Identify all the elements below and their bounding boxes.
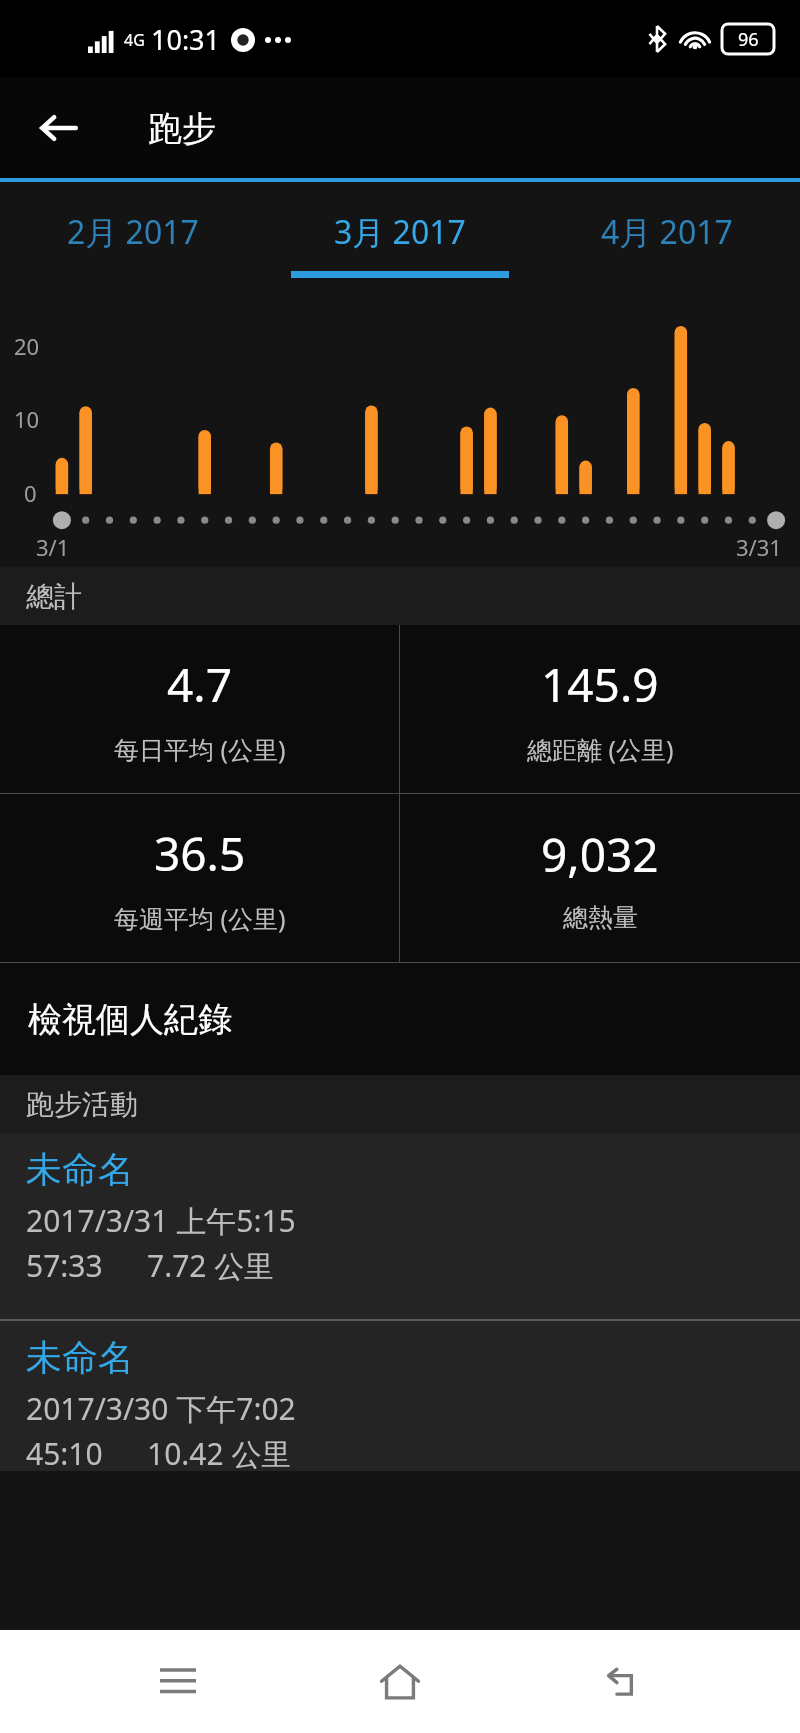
staticText: 3月 2017 <box>334 210 466 254</box>
staticText: 2017/3/30 下午7:02 <box>26 1388 296 1429</box>
button[interactable]: Home <box>355 1637 445 1727</box>
staticText: 3/31 <box>736 532 782 562</box>
staticText: 9,032 <box>541 823 659 886</box>
button[interactable]: 2月 2017 <box>0 182 266 292</box>
button[interactable]: Back <box>24 93 94 163</box>
button[interactable]: Recents <box>133 1637 223 1727</box>
staticText: 96 <box>738 27 759 52</box>
button[interactable]: 9,032 <box>400 794 800 962</box>
button[interactable]: 36.5 <box>0 794 399 962</box>
staticText: 總熱量 <box>563 902 638 933</box>
button[interactable]: 未命名 <box>0 1133 800 1319</box>
staticText: 每日平均 (公里) <box>114 732 286 766</box>
button[interactable]: 4.7 <box>0 625 399 793</box>
staticText: 4月 2017 <box>601 210 733 254</box>
staticText: 總計 <box>26 579 82 614</box>
staticText: 10 <box>14 404 40 434</box>
staticText: 10:31 <box>151 21 221 58</box>
button[interactable]: 3月 2017 <box>266 182 533 292</box>
staticText: 36.5 <box>154 822 246 885</box>
staticText: 45:10 <box>26 1433 103 1471</box>
staticText: 3/1 <box>36 532 70 562</box>
staticText: 檢視個人紀錄 <box>28 998 232 1041</box>
button[interactable]: 4月 2017 <box>533 182 800 292</box>
staticText: 145.9 <box>541 653 659 716</box>
staticText: 2月 2017 <box>67 210 199 254</box>
staticText: 20 <box>14 331 40 361</box>
button[interactable]: 未命名 <box>0 1321 800 1471</box>
staticText: 4G <box>124 29 145 51</box>
staticText: 未命名 <box>26 1335 134 1380</box>
button[interactable]: Back <box>578 1637 668 1727</box>
staticText: 0 <box>24 478 37 508</box>
staticText: 57:33 <box>26 1245 103 1286</box>
button[interactable]: 145.9 <box>400 625 800 793</box>
staticText: 未命名 <box>26 1147 134 1192</box>
staticText: 總距離 (公里) <box>527 732 674 766</box>
staticText: 7.72 公里 <box>147 1245 275 1286</box>
staticText: 2017/3/31 上午5:15 <box>26 1200 296 1241</box>
staticText: 4.7 <box>167 653 232 716</box>
staticText: 10.42 公里 <box>147 1433 292 1471</box>
button[interactable]: 檢視個人紀錄 <box>0 963 800 1075</box>
staticText: 跑步 <box>148 107 216 150</box>
staticText: 每週平均 (公里) <box>114 901 286 935</box>
staticText: 跑步活動 <box>26 1087 138 1122</box>
